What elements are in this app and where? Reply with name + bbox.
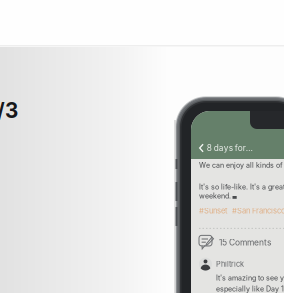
staticText: #San Francisco	[232, 206, 284, 215]
staticText: It's amazing to see y	[216, 273, 284, 282]
button[interactable]: 8 days for…	[191, 137, 284, 159]
staticText: We can enjoy all kinds of s	[199, 161, 284, 169]
staticText: Philtrick	[216, 260, 244, 268]
button[interactable]: Philtrick	[199, 249, 244, 270]
staticText: especially like Day 1	[216, 285, 284, 293]
staticText: #Sunset	[199, 206, 227, 215]
staticText: /3	[0, 98, 18, 123]
button[interactable]: 15 Comments	[199, 229, 271, 249]
staticText: 8 days for…	[207, 143, 253, 153]
staticText: 15 Comments	[219, 237, 271, 248]
staticText: weekend.	[199, 192, 231, 200]
staticText: It's so life-like. It's a great	[199, 182, 284, 191]
